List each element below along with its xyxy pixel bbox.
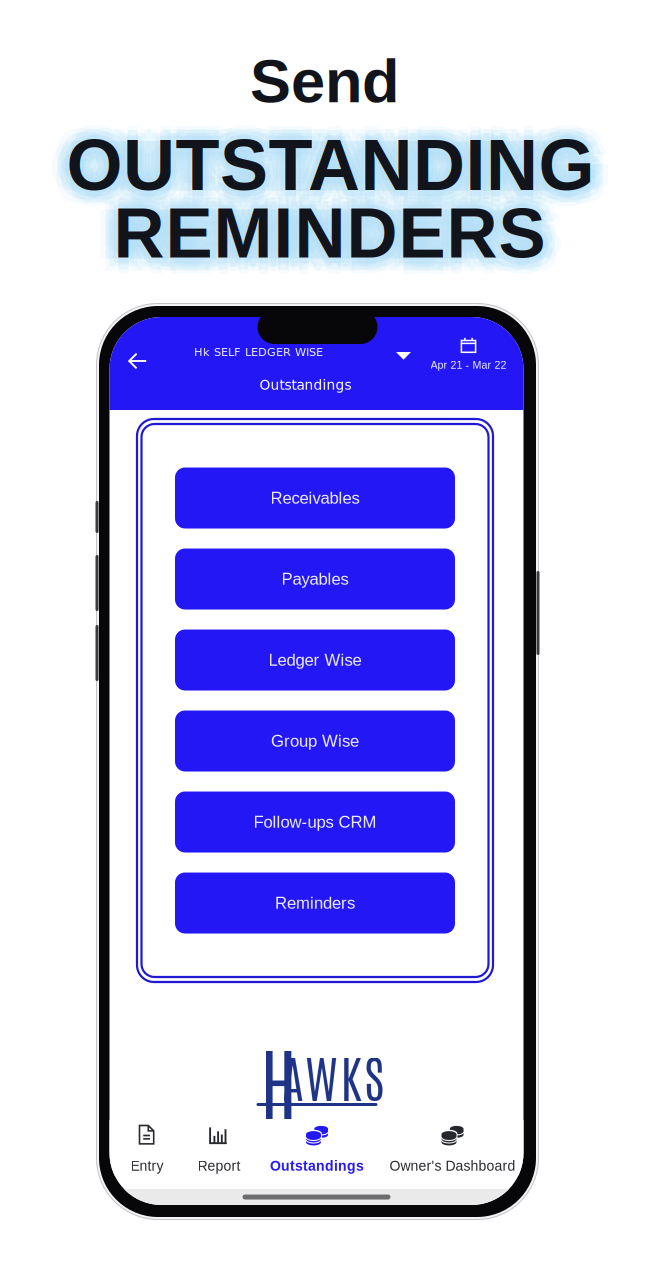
staticText: Follow-ups CRM xyxy=(253,813,376,831)
staticText: OUTSTANDING xyxy=(53,114,581,194)
staticText: Payables xyxy=(281,570,348,588)
staticText: REMINDERS xyxy=(119,194,551,273)
button[interactable]: Date range, Apr 21 to Mar 22 xyxy=(422,337,514,377)
staticText: OUTSTANDING xyxy=(75,134,603,214)
staticText: REMINDERS xyxy=(126,182,558,261)
staticText: OUTSTANDING xyxy=(60,126,588,206)
staticText: OUTSTANDING xyxy=(62,130,590,211)
staticText: OUTSTANDING xyxy=(66,141,594,221)
staticText: Hk SELF LEDGER WISE xyxy=(194,345,323,359)
button[interactable]: Receivables xyxy=(175,467,455,528)
staticText: REMINDERS xyxy=(95,194,527,273)
staticText: REMINDERS xyxy=(101,194,533,273)
staticText: OUTSTANDING xyxy=(62,121,590,202)
staticText: OUTSTANDING xyxy=(72,126,600,206)
staticText: H xyxy=(259,1027,297,1130)
staticText: OUTSTANDING xyxy=(71,130,599,211)
staticText: REMINDERS xyxy=(113,179,545,258)
staticText: OUTSTANDING xyxy=(79,138,607,218)
staticText: REMINDERS xyxy=(118,199,550,278)
button[interactable]: Back xyxy=(118,345,156,377)
staticText: REMINDERS xyxy=(126,206,558,285)
staticText: REMINDERS xyxy=(131,194,563,273)
staticText: OUTSTANDING xyxy=(66,120,594,200)
staticText: REMINDERS xyxy=(100,182,532,261)
button[interactable]: Owner's Dashboard xyxy=(378,1120,526,1176)
staticText: REMINDERS xyxy=(100,206,532,285)
staticText: Owner's Dashboard xyxy=(389,1158,515,1174)
staticText: REMINDERS xyxy=(118,190,550,269)
staticText: REMINDERS xyxy=(113,205,545,284)
staticText: REMINDERS xyxy=(113,193,545,272)
button[interactable]: Hk SELF LEDGER WISE xyxy=(183,341,333,363)
staticText: REMINDERS xyxy=(109,199,541,278)
staticText: Apr 21 - Mar 22 xyxy=(430,359,506,371)
staticText: Entry xyxy=(130,1158,163,1174)
staticText: OUTSTANDING xyxy=(66,125,594,205)
button[interactable]: Report xyxy=(177,1120,261,1176)
staticText: OUTSTANDING xyxy=(66,115,594,195)
staticText: OUTSTANDING xyxy=(57,134,585,214)
staticText: REMINDERS xyxy=(113,188,545,267)
staticText: Report xyxy=(197,1158,240,1174)
button[interactable]: Payables xyxy=(175,548,455,609)
staticText: Receivables xyxy=(270,489,359,507)
staticText: OUTSTANDING xyxy=(66,132,594,212)
staticText: REMINDERS xyxy=(122,186,554,265)
staticText: OUTSTANDING xyxy=(66,137,594,217)
staticText: OUTSTANDING xyxy=(66,111,594,191)
staticText: REMINDERS xyxy=(113,200,545,279)
staticText: OUTSTANDING xyxy=(48,126,576,206)
staticText: OUTSTANDING xyxy=(78,126,606,206)
staticText: REMINDERS xyxy=(104,186,536,265)
staticText: Outstandings xyxy=(270,1158,364,1174)
button[interactable]: Outstandings xyxy=(262,1120,372,1176)
staticText: Outstandings xyxy=(259,377,351,393)
staticText: OUTSTANDING xyxy=(79,114,607,194)
button[interactable]: Ledger Wise xyxy=(175,629,455,690)
button[interactable]: Switch ledger xyxy=(390,345,416,367)
button[interactable]: Entry xyxy=(109,1120,185,1176)
staticText: REMINDERS xyxy=(113,209,545,288)
staticText: OUTSTANDING xyxy=(54,126,582,206)
staticText: OUTSTANDING xyxy=(75,118,603,198)
staticText: OUTSTANDING xyxy=(71,121,599,202)
staticText: OUTSTANDING xyxy=(57,118,585,198)
staticText: REMINDERS xyxy=(107,194,539,273)
button[interactable]: Group Wise xyxy=(175,710,455,771)
staticText: Ledger Wise xyxy=(268,651,361,669)
staticText: OUTSTANDING xyxy=(84,126,612,206)
staticText: AWKS xyxy=(282,1044,384,1108)
staticText: REMINDERS xyxy=(109,190,541,269)
staticText: REMINDERS xyxy=(122,202,554,281)
button[interactable]: Reminders xyxy=(175,872,455,933)
staticText: Reminders xyxy=(275,894,355,912)
staticText: REMINDERS xyxy=(104,202,536,281)
staticText: REMINDERS xyxy=(125,194,557,273)
staticText: Group Wise xyxy=(271,732,359,750)
staticText: OUTSTANDING xyxy=(53,138,581,218)
staticText: Send xyxy=(250,47,399,115)
staticText: REMINDERS xyxy=(113,183,545,262)
button[interactable]: Follow-ups CRM xyxy=(175,791,455,852)
